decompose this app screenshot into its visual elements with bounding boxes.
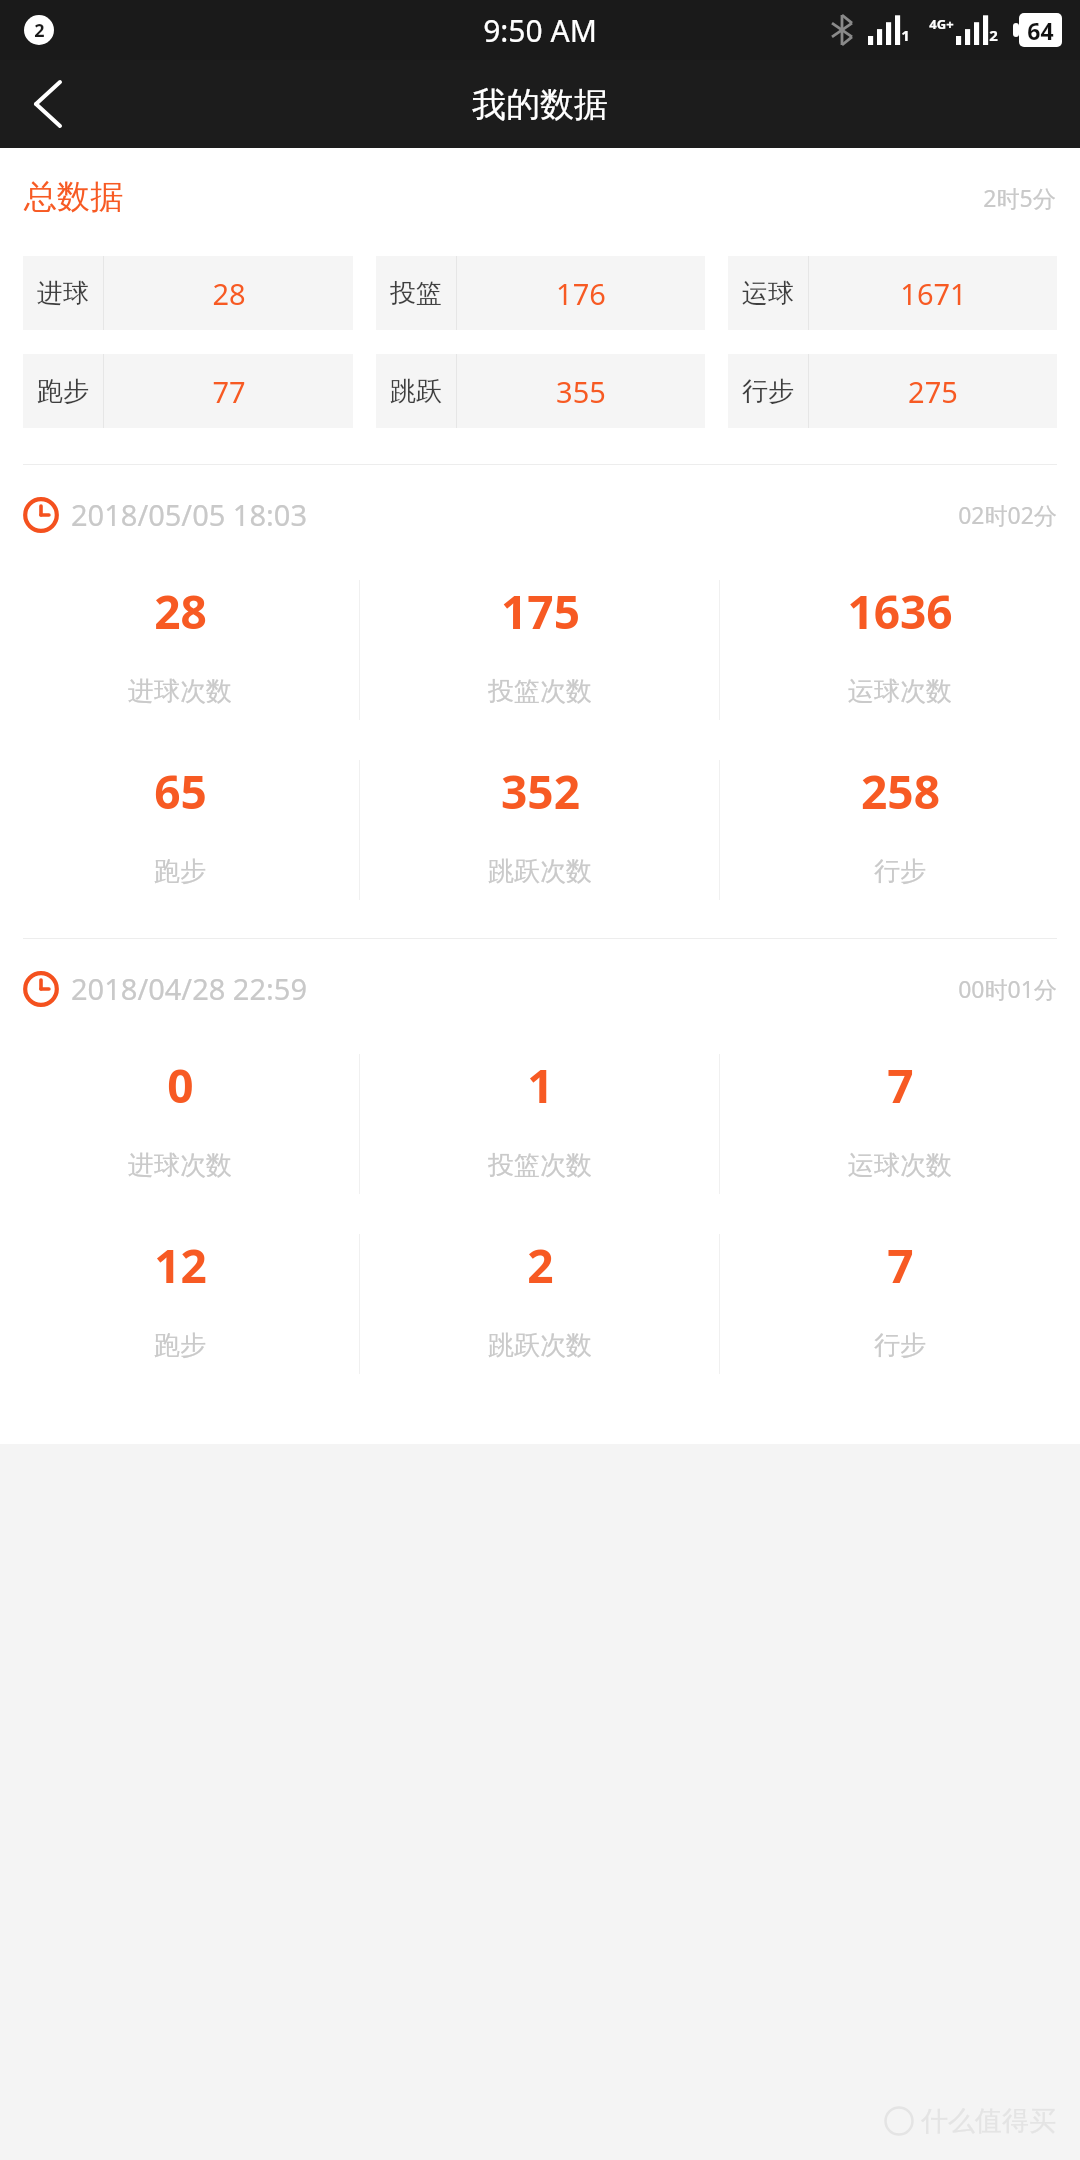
staticText: 跑步	[154, 855, 206, 888]
staticText: 投篮次数	[488, 1149, 592, 1182]
staticText: 65	[154, 760, 207, 823]
staticText: 0	[167, 1054, 194, 1117]
button[interactable]: 投篮	[376, 256, 705, 330]
staticText: 投篮	[390, 277, 442, 310]
staticText: 7	[887, 1234, 914, 1297]
staticText: 7	[887, 1054, 914, 1117]
staticText: 运球次数	[848, 1149, 952, 1182]
staticText: 2	[989, 25, 998, 45]
button[interactable]: 跑步	[23, 354, 353, 428]
staticText: 2时5分	[983, 182, 1056, 213]
staticText: 1671	[900, 274, 967, 313]
staticText: 进球次数	[128, 1149, 232, 1182]
staticText: 4G+	[929, 15, 954, 33]
staticText: 175	[501, 580, 580, 643]
staticText: 跑步	[154, 1329, 206, 1362]
staticText: 1	[527, 1054, 554, 1117]
staticText: 2	[34, 18, 45, 43]
staticText: 12	[154, 1234, 207, 1297]
staticText: 2018/04/28 22:59	[71, 969, 307, 1008]
staticText: 2018/05/05 18:03	[71, 495, 307, 534]
button[interactable]: 2018/05/05 18:03	[23, 495, 1057, 534]
staticText: 行步	[874, 855, 926, 888]
button[interactable]: 2018/04/28 22:59	[23, 969, 1057, 1008]
staticText: 352	[501, 760, 580, 823]
staticText: 258	[861, 760, 940, 823]
staticText: 00时01分	[958, 973, 1057, 1004]
button[interactable]: 行步	[728, 354, 1057, 428]
staticText: 28	[212, 274, 246, 313]
staticText: 9:50 AM	[483, 10, 597, 51]
staticText: 2	[527, 1234, 554, 1297]
staticText: 355	[556, 372, 606, 411]
staticText: 投篮次数	[488, 675, 592, 708]
staticText: 64	[1027, 15, 1054, 46]
staticText: 跳跃次数	[488, 855, 592, 888]
button[interactable]: 进球	[23, 256, 353, 330]
staticText: 进球	[37, 277, 89, 310]
staticText: 我的数据	[472, 83, 608, 126]
staticText: 275	[908, 372, 958, 411]
staticText: 总数据	[24, 176, 123, 218]
staticText: 1636	[847, 580, 953, 643]
staticText: 什么值得买	[921, 2104, 1056, 2138]
staticText: 02时02分	[958, 499, 1057, 530]
staticText: 77	[212, 372, 246, 411]
button[interactable]: Back	[0, 60, 96, 148]
button[interactable]: 运球	[728, 256, 1057, 330]
staticText: 行步	[874, 1329, 926, 1362]
staticText: 28	[154, 580, 207, 643]
staticText: 跳跃次数	[488, 1329, 592, 1362]
staticText: 行步	[742, 375, 794, 408]
staticText: 跳跃	[390, 375, 442, 408]
button[interactable]: 跳跃	[376, 354, 705, 428]
staticText: 1	[901, 25, 910, 45]
staticText: 进球次数	[128, 675, 232, 708]
staticText: 运球次数	[848, 675, 952, 708]
staticText: 跑步	[37, 375, 89, 408]
staticText: 运球	[742, 277, 794, 310]
staticText: 176	[556, 274, 606, 313]
